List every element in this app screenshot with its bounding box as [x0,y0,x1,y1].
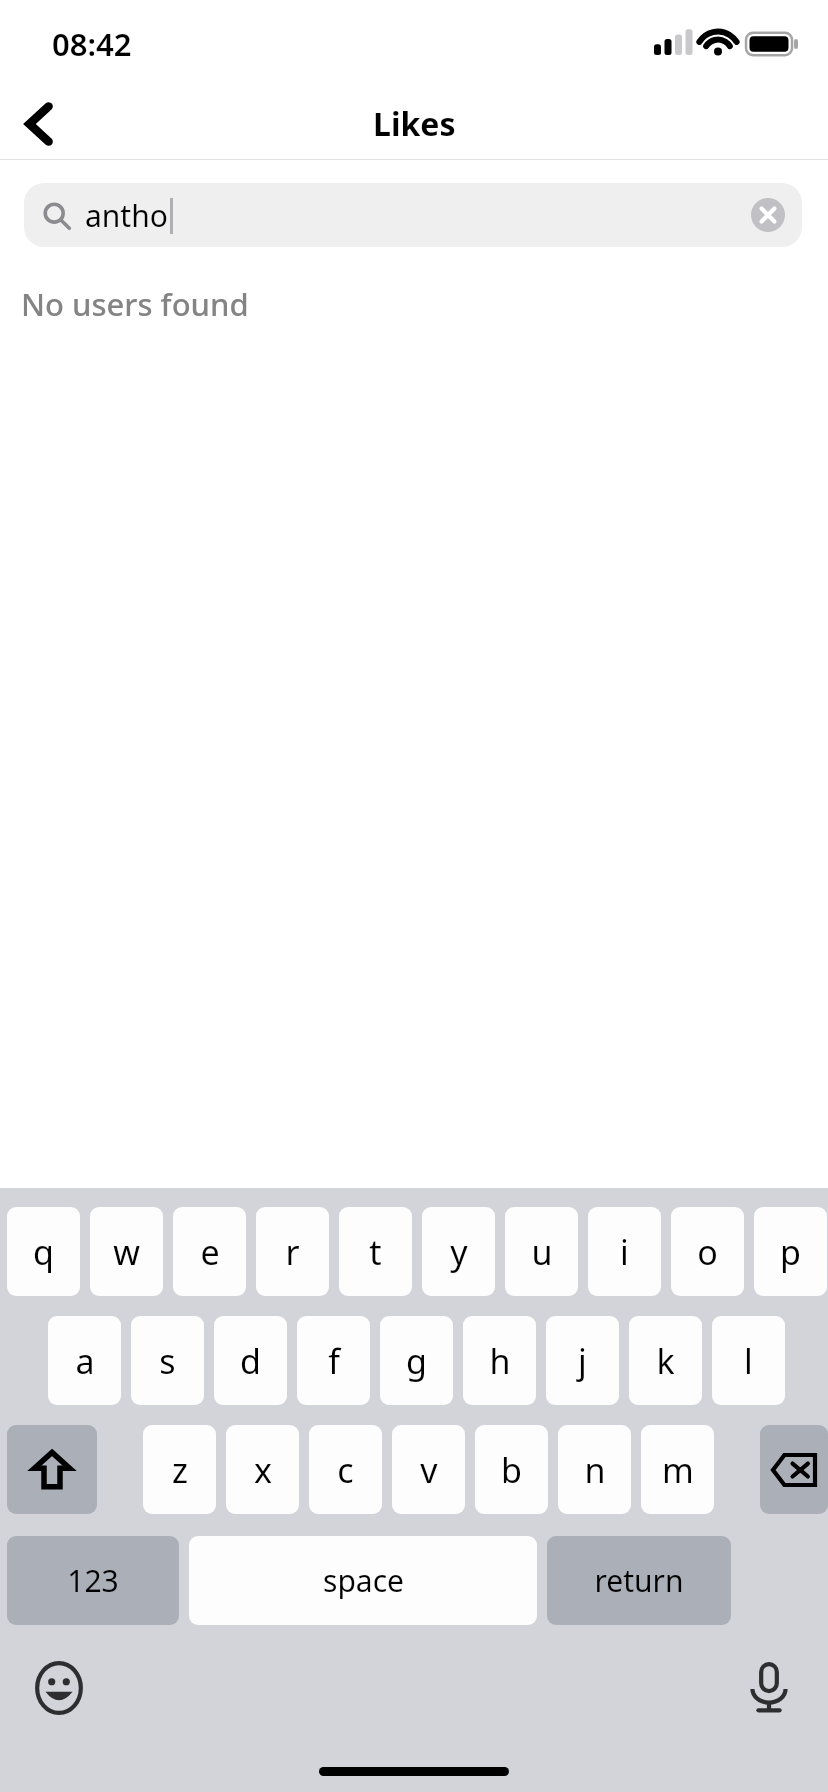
button[interactable]: m [641,1425,714,1514]
button[interactable]: Back [8,93,70,155]
button[interactable]: space [189,1536,537,1625]
button[interactable]: u [505,1207,578,1296]
staticText: i [620,1229,629,1275]
button[interactable]: q [7,1207,80,1296]
staticText: k [656,1338,675,1384]
staticText: l [744,1338,753,1384]
staticText: m [662,1447,694,1493]
staticText: 123 [67,1560,119,1601]
staticText: a [75,1338,95,1384]
staticText: d [240,1338,261,1384]
button[interactable]: l [712,1316,785,1405]
button[interactable]: antho [24,183,802,247]
staticText: x [254,1447,272,1493]
button[interactable]: p [754,1207,827,1296]
button[interactable]: n [558,1425,631,1514]
staticText: return [594,1560,684,1601]
button[interactable]: h [463,1316,536,1405]
staticText: g [406,1338,427,1384]
button[interactable]: s [131,1316,204,1405]
button[interactable]: g [380,1316,453,1405]
button[interactable]: a [48,1316,121,1405]
button[interactable]: 123 [7,1536,179,1625]
button[interactable]: Emoji [26,1655,92,1721]
staticText: j [578,1338,587,1384]
staticText: r [285,1229,300,1275]
button[interactable]: e [173,1207,246,1296]
button[interactable]: t [339,1207,412,1296]
button[interactable]: b [475,1425,548,1514]
staticText: f [328,1338,340,1384]
button[interactable]: r [256,1207,329,1296]
staticText: t [369,1229,382,1275]
staticText: h [489,1338,511,1384]
staticText: space [323,1560,404,1601]
button[interactable]: z [143,1425,216,1514]
button[interactable]: c [309,1425,382,1514]
staticText: e [200,1229,220,1275]
staticText: u [531,1229,553,1275]
button[interactable]: x [226,1425,299,1514]
staticText: p [780,1229,801,1275]
button[interactable]: Clear text [746,193,790,237]
button[interactable]: w [90,1207,163,1296]
button[interactable]: j [546,1316,619,1405]
staticText: v [420,1447,438,1493]
button[interactable]: v [392,1425,465,1514]
staticText: y [450,1229,468,1275]
staticText: b [501,1447,522,1493]
button[interactable]: Dictation [736,1655,802,1721]
button[interactable]: y [422,1207,495,1296]
button[interactable]: return [547,1536,731,1625]
button[interactable]: d [214,1316,287,1405]
button[interactable]: k [629,1316,702,1405]
staticText: No users found [21,283,249,325]
button[interactable]: f [297,1316,370,1405]
button[interactable]: i [588,1207,661,1296]
staticText: s [159,1338,176,1384]
staticText: antho [85,195,168,236]
button[interactable]: Delete [760,1425,828,1514]
button[interactable]: o [671,1207,744,1296]
button[interactable]: Shift [7,1425,97,1514]
staticText: n [584,1447,606,1493]
staticText: 08:42 [52,23,132,65]
staticText: Likes [373,102,456,146]
staticText: q [33,1229,54,1275]
staticText: z [172,1447,188,1493]
staticText: o [697,1229,718,1275]
staticText: c [337,1447,354,1493]
staticText: w [113,1229,140,1275]
